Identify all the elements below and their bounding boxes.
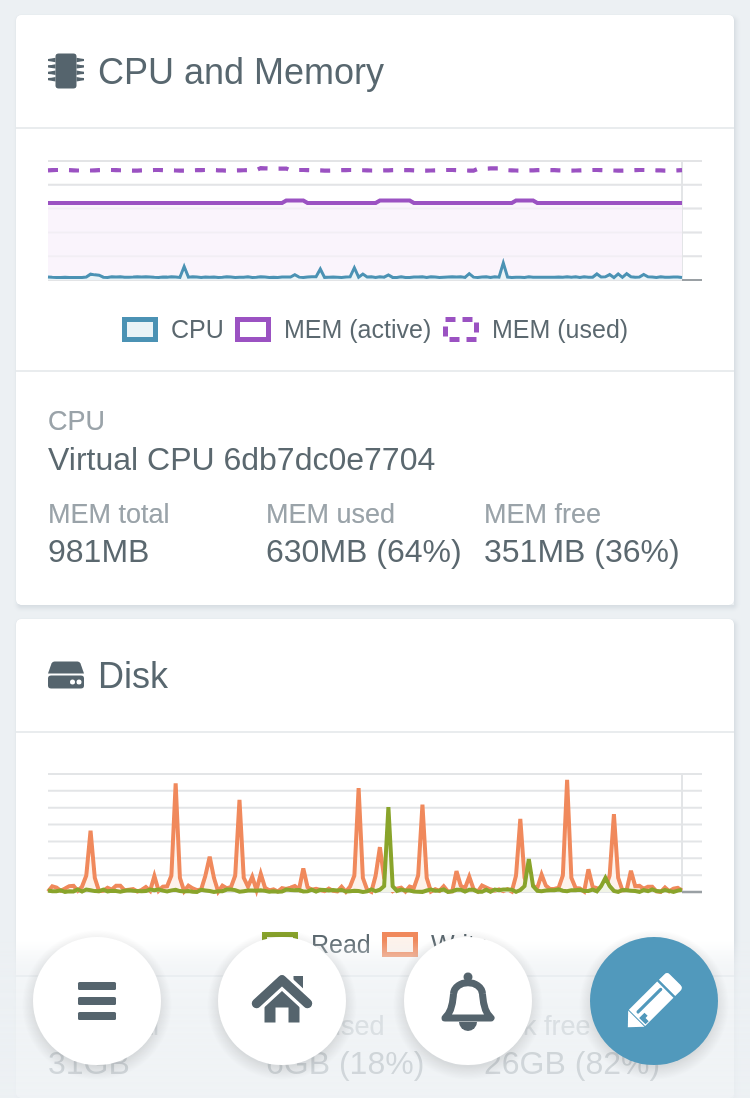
staticText: 630MB (64%) — [266, 533, 462, 569]
staticText: MEM free — [484, 499, 602, 529]
button[interactable]: Menu — [33, 937, 161, 1065]
staticText: Disk total — [48, 1011, 160, 1041]
staticText: 6GB (18%) — [266, 1045, 425, 1081]
staticText: MEM total — [48, 499, 170, 529]
button[interactable]: Edit — [590, 937, 718, 1065]
staticText: Read — [311, 930, 371, 958]
staticText: 26GB (82%) — [484, 1045, 661, 1081]
staticText: 981MB — [48, 533, 150, 569]
staticText: Disk — [98, 655, 168, 695]
button[interactable]: Notifications — [404, 937, 532, 1065]
staticText: MEM (active) — [284, 315, 432, 343]
button[interactable]: Home — [218, 937, 346, 1065]
staticText: CPU — [48, 406, 106, 436]
staticText: Write — [431, 930, 489, 958]
staticText: Virtual CPU 6db7dc0e7704 — [48, 441, 436, 477]
staticText: MEM used — [266, 499, 396, 529]
staticText: Disk used — [266, 1011, 385, 1041]
staticText: Disk free — [484, 1011, 591, 1041]
staticText: 31GB — [48, 1045, 130, 1081]
staticText: CPU — [171, 315, 224, 343]
staticText: 351MB (36%) — [484, 533, 680, 569]
staticText: CPU and Memory — [98, 51, 385, 91]
staticText: MEM (used) — [492, 315, 629, 343]
